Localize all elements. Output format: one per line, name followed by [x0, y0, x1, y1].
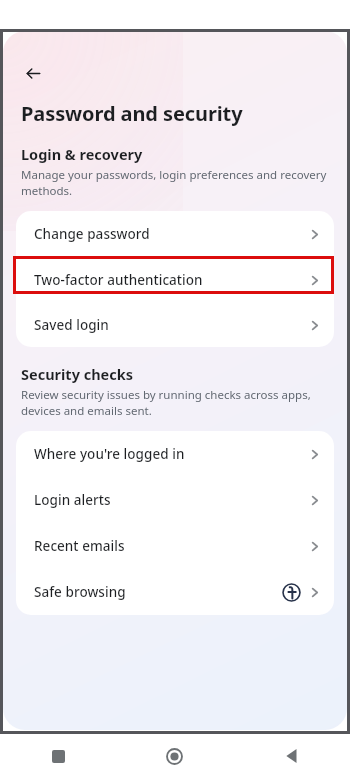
button[interactable]: Home [116, 734, 233, 778]
button[interactable]: Saved login [16, 303, 334, 347]
staticText: Review security issues by running checks… [21, 387, 311, 418]
button[interactable]: Safe browsing [16, 569, 334, 615]
staticText: Password and security [21, 100, 243, 127]
staticText: Recent emails [34, 537, 125, 555]
button[interactable]: Recent emails [16, 523, 334, 569]
staticText: Login & recovery [21, 144, 143, 164]
staticText: Saved login [34, 316, 109, 334]
button[interactable]: Login alerts [16, 477, 334, 523]
staticText: Change password [34, 225, 150, 243]
staticText: Safe browsing [34, 583, 126, 601]
button[interactable]: Change password [16, 211, 334, 257]
button[interactable]: Recent apps [0, 734, 116, 778]
button[interactable]: Where you're logged in [16, 431, 334, 477]
other: Facebook [282, 583, 301, 602]
button[interactable]: Two-factor authentication [16, 257, 334, 303]
button[interactable]: Back [17, 57, 49, 89]
staticText: Manage your passwords, login preferences… [21, 167, 327, 198]
staticText: Two-factor authentication [34, 271, 203, 289]
staticText: Security checks [21, 364, 134, 384]
staticText: Login alerts [34, 491, 111, 509]
staticText: Where you're logged in [34, 445, 185, 463]
button[interactable]: Back [233, 734, 350, 778]
